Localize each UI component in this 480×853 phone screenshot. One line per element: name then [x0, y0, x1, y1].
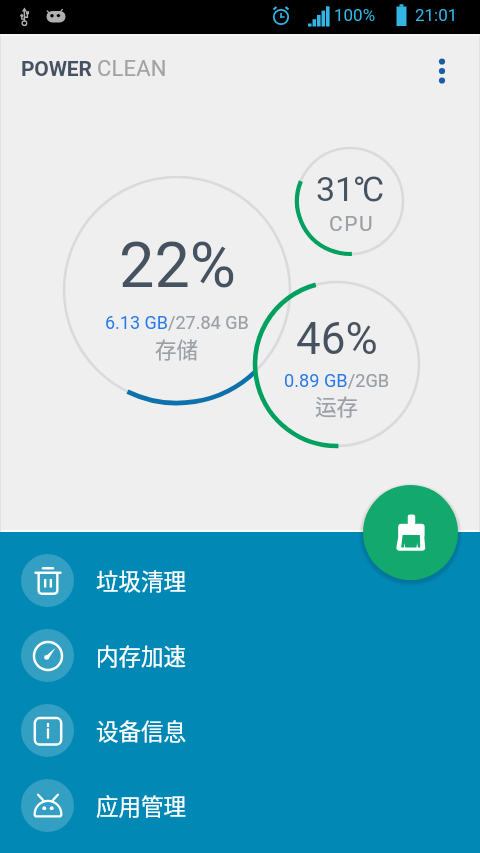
- button[interactable]: 垃圾清理: [0, 543, 480, 618]
- button[interactable]: More options: [418, 47, 466, 95]
- staticText: 0.89 GB/2GB: [284, 370, 390, 391]
- staticText: 21:01: [415, 5, 458, 25]
- staticText: 6.13 GB/27.84 GB: [105, 312, 249, 333]
- button[interactable]: 内存加速: [0, 618, 480, 693]
- staticText: 内存加速: [96, 639, 187, 672]
- button[interactable]: 应用管理: [0, 768, 480, 843]
- staticText: 存储: [155, 333, 199, 364]
- staticText: 垃圾清理: [96, 564, 187, 597]
- staticText: 46%: [296, 313, 378, 365]
- staticText: 22%: [119, 229, 236, 303]
- button[interactable]: 设备信息: [0, 693, 480, 768]
- button[interactable]: Clean: [363, 485, 458, 580]
- staticText: 运存: [315, 390, 359, 421]
- staticText: 100%: [334, 5, 376, 25]
- staticText: 31℃: [316, 169, 385, 209]
- staticText: 设备信息: [96, 714, 187, 747]
- staticText: CLEAN: [97, 56, 167, 82]
- staticText: 应用管理: [96, 789, 187, 822]
- staticText: CPU: [329, 212, 375, 237]
- staticText: POWER: [21, 57, 92, 82]
